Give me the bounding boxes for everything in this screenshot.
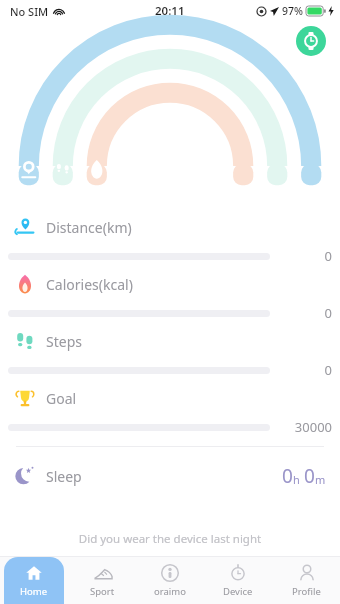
staticText: Sleep (46, 467, 82, 486)
button[interactable]: Home (4, 557, 64, 604)
button[interactable]: Distance(km) (0, 208, 340, 265)
staticText: Distance(km) (46, 218, 132, 237)
staticText: 0 (324, 304, 332, 322)
button[interactable]: Calories(kcal) (0, 265, 340, 322)
button[interactable]: Goal (0, 379, 340, 436)
staticText: 0 (282, 463, 293, 489)
staticText: Goal (46, 389, 77, 408)
button[interactable]: Sleep (0, 447, 340, 497)
staticText: 0 (304, 463, 315, 489)
button[interactable]: Watch (296, 26, 326, 56)
staticText: 20:11 (155, 3, 185, 19)
staticText: Sport (90, 585, 115, 598)
staticText: m (315, 472, 326, 487)
staticText: Did you wear the device last night (0, 531, 340, 547)
staticText: Profile (292, 585, 321, 598)
staticText: Home (20, 585, 48, 598)
staticText: No SIM (10, 4, 49, 19)
staticText: Steps (46, 332, 82, 351)
staticText: 30000 (294, 418, 332, 436)
staticText: 0 (324, 247, 332, 265)
button[interactable]: oraimo (140, 557, 200, 604)
button[interactable]: Steps (0, 322, 340, 379)
staticText: Device (223, 585, 253, 598)
button[interactable]: Profile (276, 557, 336, 604)
staticText: Calories(kcal) (46, 275, 133, 294)
staticText: h (293, 472, 300, 487)
staticText: oraimo (154, 585, 186, 598)
staticText: 0 (324, 361, 332, 379)
staticText: 97% (282, 4, 303, 18)
button[interactable]: Sport (72, 557, 132, 604)
button[interactable]: Device (208, 557, 268, 604)
